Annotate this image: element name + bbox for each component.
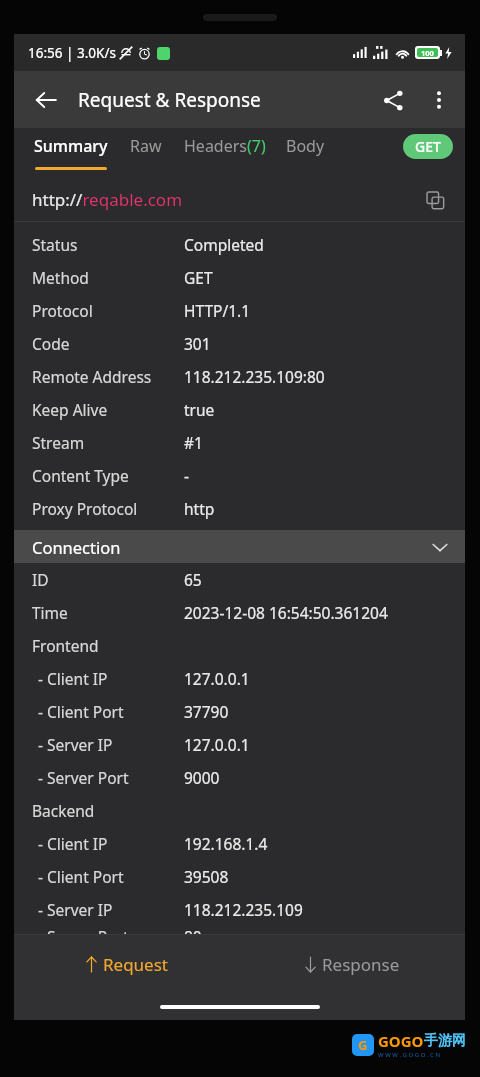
staticText: Request & Response [78, 87, 261, 113]
staticText: HTTP/1.1 [184, 300, 251, 321]
button[interactable]: Stream [14, 426, 465, 459]
button[interactable]: - Server Port [14, 926, 465, 934]
staticText: 2023-12-08 16:54:50.361204 [184, 602, 388, 623]
staticText: GET [184, 267, 213, 288]
staticText: 手游网 [424, 1032, 466, 1050]
staticText: - Client IP [34, 833, 184, 854]
staticText: - Client Port [34, 866, 184, 887]
button[interactable]: Protocol [14, 294, 465, 327]
staticText: Protocol [32, 300, 184, 321]
staticText: Method [32, 267, 184, 288]
button[interactable]: Headers(7) [174, 128, 276, 164]
staticText: Backend [32, 800, 184, 821]
staticText: GOGO [378, 1031, 424, 1051]
button[interactable]: Response [239, 935, 465, 994]
button[interactable]: Keep Alive [14, 393, 465, 426]
staticText: Summary [34, 135, 108, 157]
staticText: 192.168.1.4 [184, 833, 268, 854]
button[interactable]: - Client Port [14, 860, 465, 893]
staticText: - Client IP [34, 668, 184, 689]
button[interactable]: Frontend [14, 629, 465, 662]
button[interactable]: - Client Port [14, 695, 465, 728]
staticText: Frontend [32, 635, 184, 656]
staticText: 100 [421, 48, 434, 57]
button[interactable]: More options [417, 78, 461, 122]
staticText: Connection [32, 536, 121, 558]
staticText: - Server Port [34, 767, 184, 788]
staticText: Time [32, 602, 184, 623]
staticText: 127.0.0.1 [184, 734, 250, 755]
staticText: Status [32, 234, 184, 255]
button[interactable]: - Client IP [14, 827, 465, 860]
staticText: 127.0.0.1 [184, 668, 250, 689]
button[interactable]: Code [14, 327, 465, 360]
staticText: Remote Address [32, 366, 184, 387]
button[interactable]: Copy URL [417, 182, 453, 218]
staticText: Raw [130, 135, 162, 157]
staticText: - Server IP [34, 734, 184, 755]
button[interactable]: Body [276, 128, 335, 164]
button[interactable]: Remote Address [14, 360, 465, 393]
button[interactable]: - Server Port [14, 761, 465, 794]
staticText: ID [32, 569, 184, 590]
staticText: 39508 [184, 866, 229, 887]
button[interactable]: Share [369, 76, 417, 124]
button[interactable]: Content Type [14, 459, 465, 492]
staticText: Headers(7) [184, 135, 266, 157]
staticText: Stream [32, 432, 184, 453]
button[interactable]: Time [14, 596, 465, 629]
button[interactable]: Raw [118, 128, 174, 164]
staticText: - Client Port [34, 701, 184, 722]
button[interactable]: - Server IP [14, 893, 465, 926]
staticText: Body [286, 135, 325, 157]
staticText: 80 [184, 926, 202, 934]
staticText: G [358, 1036, 368, 1054]
button[interactable]: Proxy Protocol [14, 492, 465, 525]
staticText: Completed [184, 234, 264, 255]
button[interactable]: Status [14, 228, 465, 261]
staticText: Code [32, 333, 184, 354]
button[interactable]: Connection [14, 530, 465, 563]
staticText: Content Type [32, 465, 184, 486]
button[interactable]: - Client IP [14, 662, 465, 695]
staticText: Keep Alive [32, 399, 184, 420]
button[interactable]: ID [14, 563, 465, 596]
staticText: 118.212.235.109 [184, 899, 303, 920]
staticText: #1 [184, 432, 203, 453]
staticText: - Server IP [34, 899, 184, 920]
staticText: 9000 [184, 767, 220, 788]
staticText: 65 [184, 569, 202, 590]
staticText: - [184, 465, 189, 486]
staticText: W W W . G O G O . C N [378, 1051, 441, 1059]
staticText: 37790 [184, 701, 229, 722]
button[interactable]: Summary [24, 128, 118, 170]
staticText: http://reqable.com [32, 188, 183, 211]
staticText: 16:56 | 3.0K/s [28, 44, 116, 62]
button[interactable]: Back [22, 76, 70, 124]
staticText: 118.212.235.109:80 [184, 366, 325, 387]
button[interactable]: GET [403, 134, 453, 159]
button[interactable]: - Server IP [14, 728, 465, 761]
button[interactable]: Backend [14, 794, 465, 827]
staticText: GET [415, 137, 441, 156]
staticText: true [184, 399, 215, 420]
staticText: http [184, 498, 215, 519]
button[interactable]: Method [14, 261, 465, 294]
staticText: Request [103, 953, 168, 976]
button[interactable]: Request [14, 935, 239, 994]
staticText: 301 [184, 333, 211, 354]
staticText: - Server Port [34, 926, 184, 934]
staticText: Response [322, 953, 400, 976]
staticText: Proxy Protocol [32, 498, 184, 519]
